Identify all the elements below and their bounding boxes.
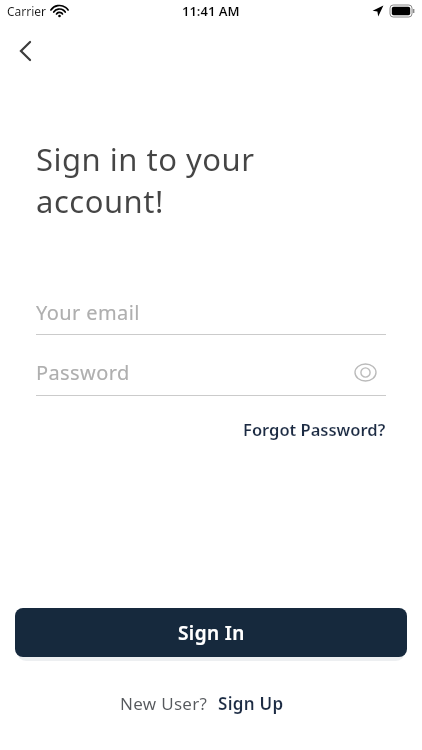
staticText: New User? xyxy=(120,692,208,715)
staticText: Your email xyxy=(36,299,140,326)
staticText: Carrier xyxy=(7,3,47,19)
button[interactable]: Forgot Password? xyxy=(166,414,386,444)
staticText: Sign in to your account! xyxy=(36,138,255,222)
button[interactable]: New User? xyxy=(120,692,284,715)
staticText: Sign Up xyxy=(218,692,284,715)
button[interactable] xyxy=(19,41,32,61)
button[interactable]: Your email xyxy=(36,297,386,335)
staticText: Password xyxy=(36,359,130,386)
staticText: Sign In xyxy=(178,620,245,646)
staticText: 11:41 AM xyxy=(182,2,240,20)
button[interactable]: Sign In xyxy=(15,608,407,657)
button[interactable]: Password xyxy=(36,358,386,396)
staticText: Forgot Password? xyxy=(243,418,386,440)
